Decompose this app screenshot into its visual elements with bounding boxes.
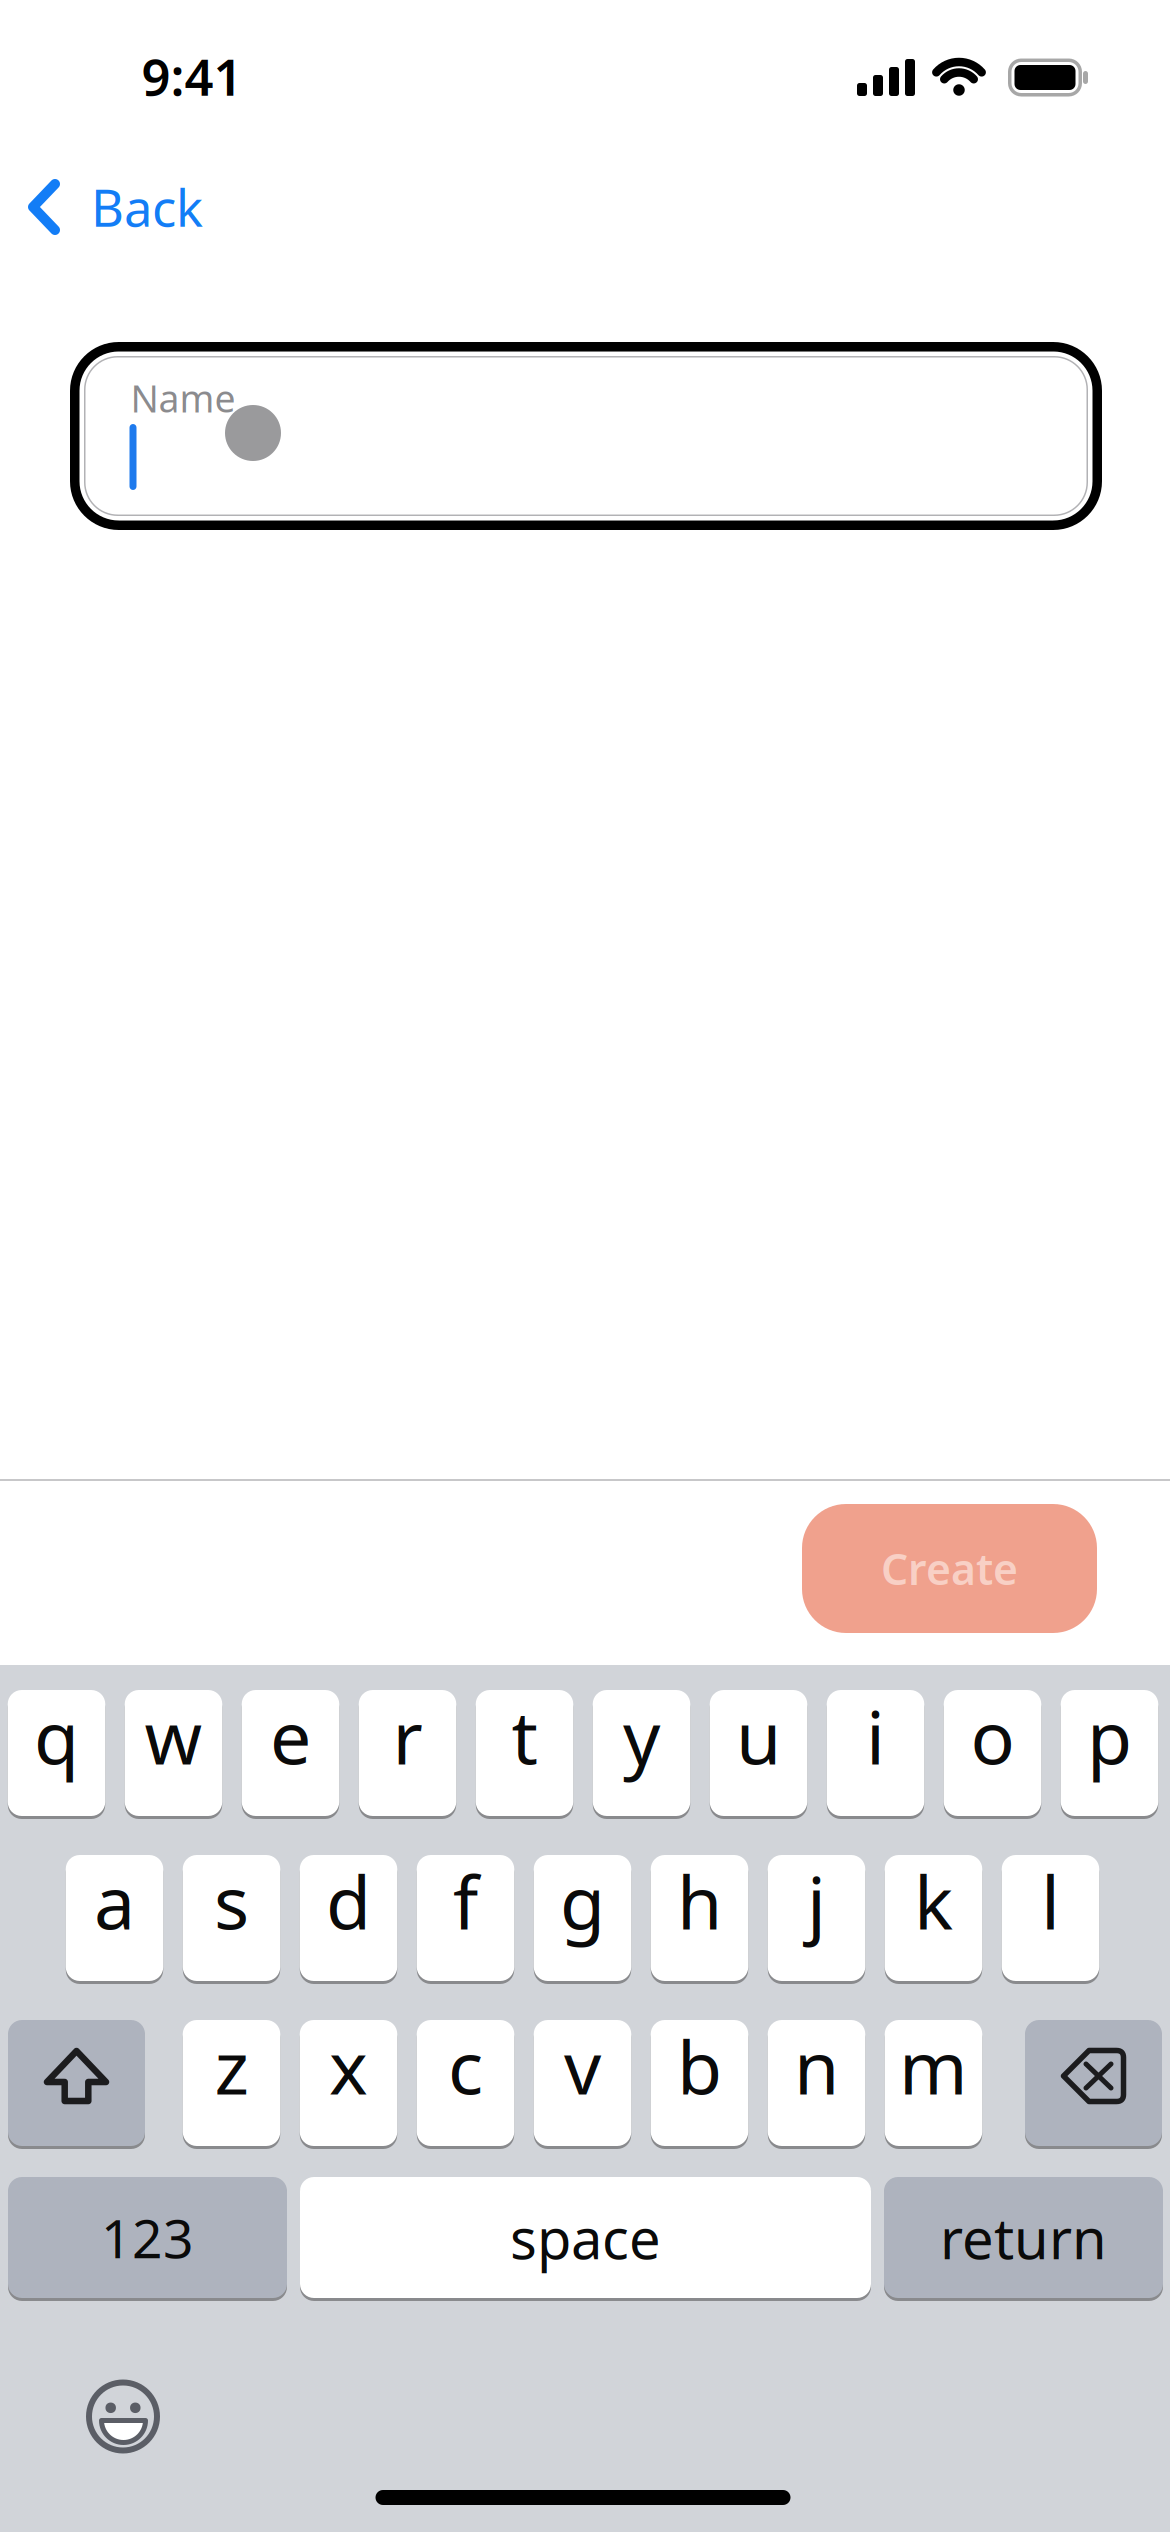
staticText: q [34, 1687, 79, 1785]
staticText: x [329, 2017, 368, 2115]
button[interactable]: t [476, 1688, 573, 1817]
staticText: 9:41 [141, 42, 242, 110]
staticText: l [1041, 1852, 1060, 1950]
button[interactable]: Shift [8, 2018, 145, 2147]
staticText: n [794, 2017, 839, 2115]
staticText: e [270, 1687, 311, 1785]
staticText: r [392, 1687, 422, 1785]
staticText: g [560, 1852, 605, 1950]
staticText: b [677, 2017, 722, 2115]
button[interactable]: z [183, 2018, 280, 2147]
staticText: o [970, 1687, 1014, 1785]
button[interactable]: space [300, 2175, 871, 2299]
button[interactable]: o [944, 1688, 1041, 1817]
staticText: Create [881, 1540, 1018, 1597]
staticText: space [510, 2200, 661, 2275]
staticText: Name [130, 373, 235, 423]
staticText: a [94, 1852, 135, 1950]
button[interactable]: v [534, 2018, 631, 2147]
button[interactable]: Back [33, 173, 203, 241]
staticText: y [623, 1687, 660, 1785]
button[interactable]: l [1002, 1853, 1099, 1982]
staticText: c [448, 2017, 483, 2115]
button[interactable]: c [417, 2018, 514, 2147]
button[interactable]: n [768, 2018, 865, 2147]
staticText: v [564, 2017, 601, 2115]
staticText: m [899, 2017, 968, 2115]
staticText: u [736, 1687, 781, 1785]
staticText: f [453, 1852, 478, 1950]
button[interactable]: d [300, 1853, 397, 1982]
button[interactable]: Emoji [86, 2379, 160, 2453]
button[interactable]: q [8, 1688, 105, 1817]
button[interactable]: b [651, 2018, 748, 2147]
button[interactable]: m [885, 2018, 982, 2147]
staticText: i [866, 1687, 885, 1785]
button[interactable]: i [827, 1688, 924, 1817]
button[interactable]: e [242, 1688, 339, 1817]
button[interactable]: return [884, 2175, 1163, 2299]
button[interactable]: Name [70, 342, 1102, 530]
button[interactable]: k [885, 1853, 982, 1982]
staticText: return [940, 2200, 1107, 2275]
staticText: p [1087, 1687, 1132, 1785]
button[interactable]: g [534, 1853, 631, 1982]
button[interactable]: u [710, 1688, 807, 1817]
button[interactable]: s [183, 1853, 280, 1982]
button[interactable]: 123 [8, 2175, 287, 2299]
button[interactable]: h [651, 1853, 748, 1982]
staticText: w [144, 1687, 202, 1785]
button[interactable]: a [66, 1853, 163, 1982]
staticText: t [511, 1687, 537, 1785]
button[interactable]: p [1061, 1688, 1158, 1817]
button[interactable]: x [300, 2018, 397, 2147]
button[interactable]: f [417, 1853, 514, 1982]
staticText: Back [91, 173, 203, 241]
button[interactable]: Delete [1025, 2018, 1162, 2147]
staticText: 123 [101, 2202, 194, 2273]
button[interactable]: r [359, 1688, 456, 1817]
staticText: s [214, 1852, 249, 1950]
button[interactable]: w [125, 1688, 222, 1817]
button[interactable]: y [593, 1688, 690, 1817]
staticText: d [326, 1852, 371, 1950]
staticText: j [807, 1852, 826, 1950]
staticText: h [677, 1852, 722, 1950]
staticText: k [914, 1852, 953, 1950]
button[interactable]: j [768, 1853, 865, 1982]
staticText: z [214, 2017, 248, 2115]
button[interactable]: Create [802, 1504, 1097, 1633]
